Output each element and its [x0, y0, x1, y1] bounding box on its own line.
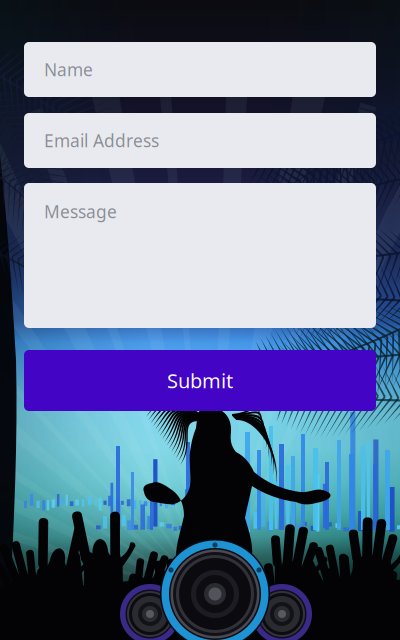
staticText: Name [44, 58, 93, 81]
button[interactable]: Name [24, 42, 376, 97]
button[interactable]: Message [24, 183, 376, 328]
staticText: Message [44, 200, 117, 223]
staticText: Submit [167, 367, 233, 394]
staticText: Email Address [44, 129, 159, 152]
button[interactable]: Email Address [24, 113, 376, 168]
button[interactable]: Submit [24, 350, 376, 411]
